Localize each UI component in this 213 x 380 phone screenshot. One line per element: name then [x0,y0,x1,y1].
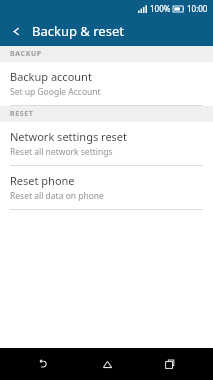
staticText: 10:00 [187,3,208,14]
staticText: Network settings reset [10,129,128,144]
button[interactable]: Recent apps [150,348,190,380]
button[interactable]: Back [0,16,32,46]
button[interactable]: Back [23,348,63,380]
staticText: Set up Google Account [10,86,101,98]
staticText: Reset phone [10,173,75,188]
staticText: 100% [150,3,171,14]
button[interactable]: Backup account [0,62,213,105]
staticText: Backup & reset [32,22,124,40]
staticText: Backup account [10,69,92,84]
button[interactable]: Home [87,348,127,380]
button[interactable]: Network settings reset [0,122,213,165]
button[interactable]: Reset phone [0,166,213,209]
staticText: RESET [10,109,34,119]
staticText: Reset all data on phone [10,190,104,202]
staticText: BACKUP [10,49,42,59]
staticText: Reset all network settings [10,146,113,158]
